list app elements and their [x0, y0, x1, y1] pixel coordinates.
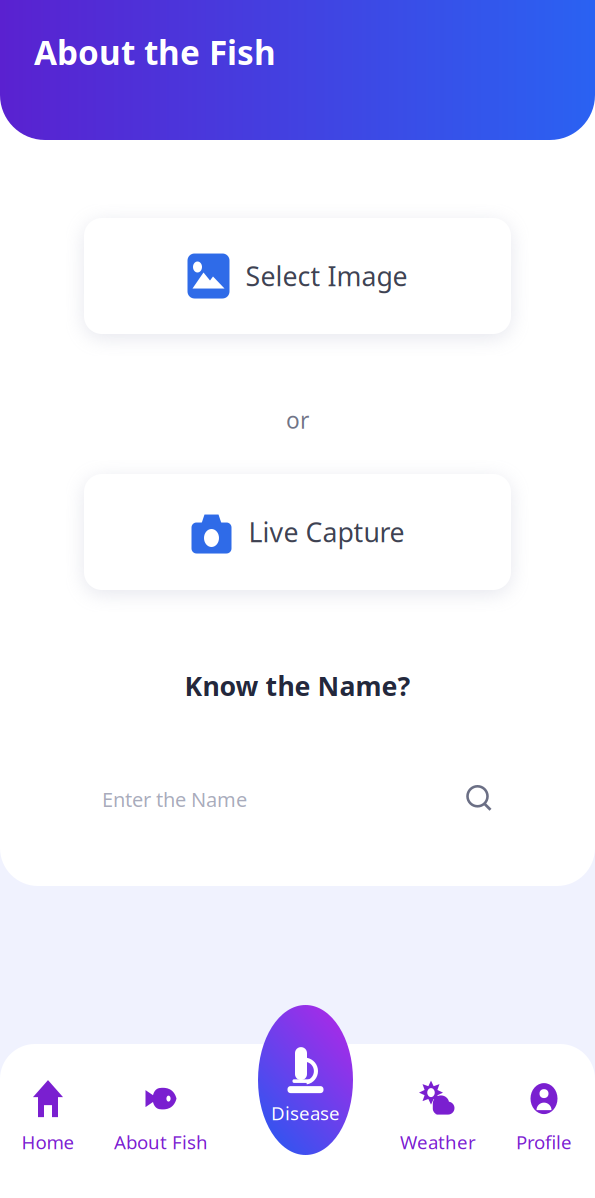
button[interactable]: Select Image — [84, 218, 511, 334]
button[interactable]: Search — [467, 786, 493, 812]
staticText: Select Image — [245, 258, 407, 294]
button[interactable]: Disease — [258, 1005, 353, 1155]
staticText: About the Fish — [34, 30, 276, 74]
staticText: Profile — [516, 1130, 572, 1154]
staticText: Enter the Name — [102, 786, 247, 813]
button[interactable]: Home — [0, 1080, 96, 1154]
button[interactable]: Live Capture — [84, 474, 511, 590]
staticText: or — [286, 405, 309, 435]
button[interactable]: About Fish — [96, 1080, 226, 1154]
staticText: Live Capture — [248, 514, 404, 550]
staticText: Home — [21, 1130, 74, 1154]
staticText: Weather — [400, 1130, 476, 1154]
button[interactable]: Weather — [383, 1080, 493, 1154]
staticText: Know the Name? — [184, 668, 410, 703]
staticText: About Fish — [114, 1130, 208, 1154]
staticText: Disease — [271, 1101, 340, 1125]
button[interactable]: Profile — [493, 1080, 595, 1154]
